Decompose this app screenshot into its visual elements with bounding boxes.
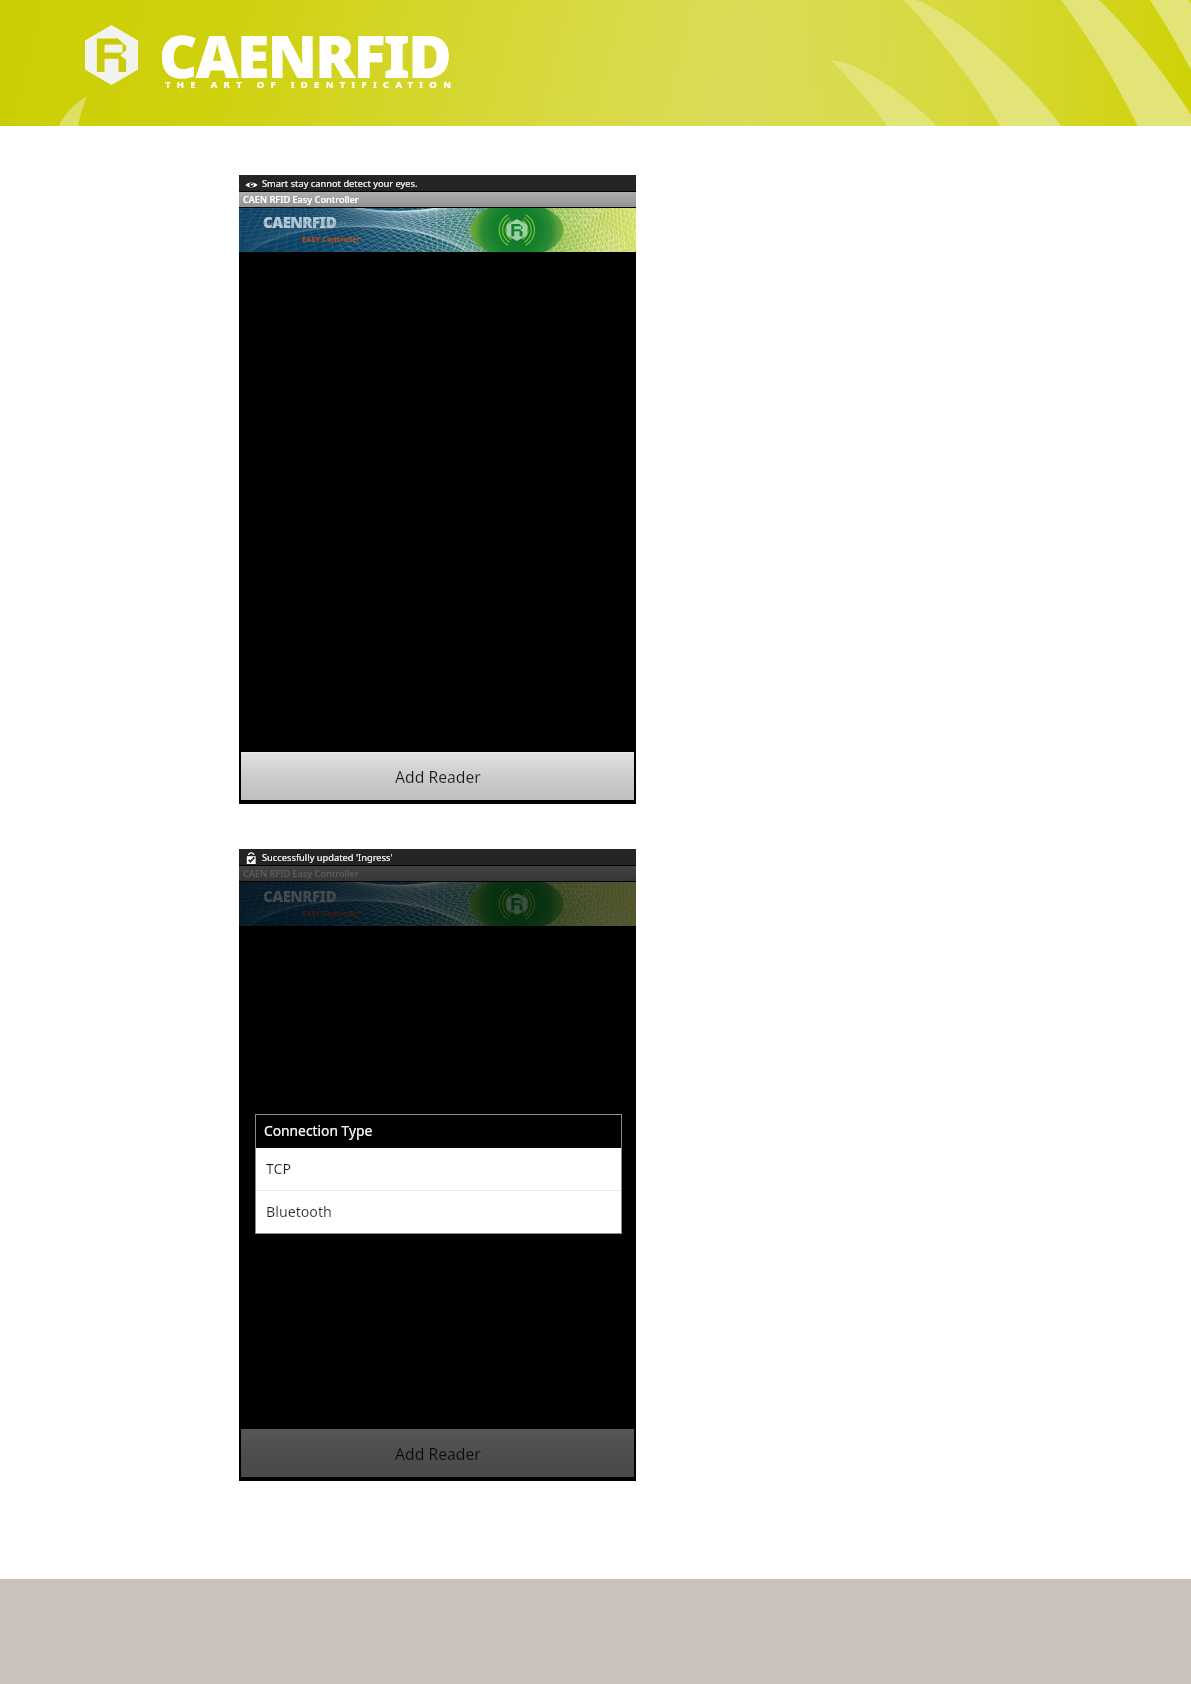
- staticText: THE ART OF IDENTIFICATION: [264, 222, 348, 226]
- staticText: CAENRFID: [159, 15, 450, 91]
- staticText: CAEN RFID Easy Controller: [243, 867, 359, 880]
- staticText: THE ART OF IDENTIFICATION: [264, 896, 348, 900]
- staticText: Add Reader: [395, 766, 481, 787]
- staticText: EASY Controller: [302, 908, 360, 918]
- button[interactable]: Add Reader: [241, 1429, 634, 1477]
- staticText: EASY Controller: [302, 234, 360, 244]
- staticText: Connection Type: [264, 1121, 373, 1140]
- staticText: CAENRFID: [263, 886, 337, 906]
- staticText: Bluetooth: [266, 1202, 332, 1221]
- staticText: Add Reader: [395, 1443, 481, 1464]
- staticText: TCP: [266, 1159, 292, 1178]
- button[interactable]: TCP: [256, 1148, 621, 1190]
- staticText: CAEN RFID Easy Controller: [243, 193, 359, 206]
- staticText: Successfully updated 'Ingress': [262, 851, 393, 864]
- staticText: CAENRFID: [263, 212, 337, 232]
- staticText: Smart stay cannot detect your eyes.: [262, 177, 418, 190]
- button[interactable]: Add Reader: [241, 752, 634, 800]
- button[interactable]: Bluetooth: [256, 1191, 621, 1233]
- staticText: THE ART OF IDENTIFICATION: [165, 78, 458, 91]
